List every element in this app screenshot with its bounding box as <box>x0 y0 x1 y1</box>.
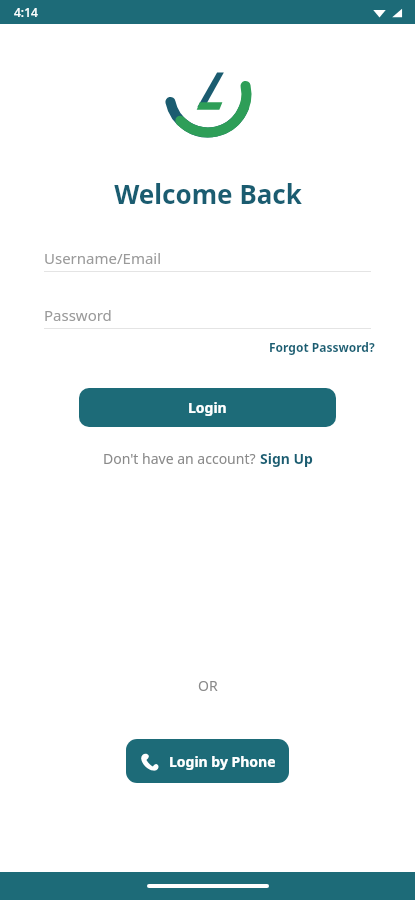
other: App logo <box>160 46 256 142</box>
button[interactable]: Forgot Password? <box>267 337 377 357</box>
staticText: Don't have an account? <box>103 449 260 468</box>
staticText: Forgot Password? <box>269 339 375 355</box>
button[interactable]: Password <box>44 301 371 329</box>
button[interactable]: Sign Up <box>260 449 313 468</box>
staticText: Welcome Back <box>114 176 302 211</box>
other: Phone <box>140 752 159 771</box>
staticText: Password <box>44 305 112 325</box>
staticText: Login by Phone <box>169 752 276 771</box>
staticText: Login <box>188 398 227 417</box>
button[interactable]: Login <box>79 388 336 427</box>
staticText: OR <box>198 676 218 695</box>
button[interactable]: Username/Email <box>44 244 371 272</box>
staticText: Username/Email <box>44 248 162 268</box>
staticText: 4:14 <box>14 4 38 20</box>
button[interactable]: Phone <box>126 739 289 783</box>
staticText: Sign Up <box>260 449 313 468</box>
